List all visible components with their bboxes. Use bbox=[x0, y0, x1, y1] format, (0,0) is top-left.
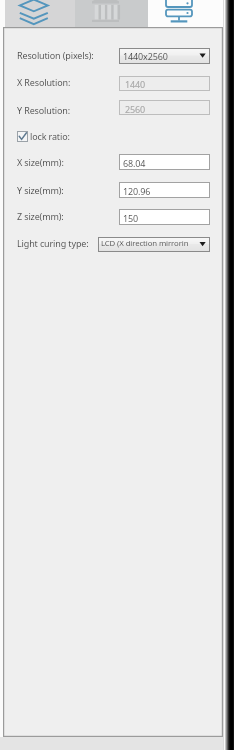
button[interactable]: Resolution preset bbox=[119, 48, 210, 64]
button[interactable]: Z size bbox=[119, 209, 210, 225]
button[interactable]: Support bbox=[75, 0, 148, 27]
button[interactable]: X Resolution bbox=[119, 76, 210, 91]
button[interactable]: X size bbox=[119, 154, 210, 170]
staticText: X size(mm): bbox=[17, 156, 64, 168]
staticText: 120.96 bbox=[123, 185, 151, 197]
button[interactable]: Y size bbox=[119, 182, 210, 198]
button[interactable]: Light curing type bbox=[98, 237, 210, 252]
staticText: X Resolution: bbox=[17, 76, 71, 88]
staticText: Light curing type: bbox=[17, 237, 89, 249]
staticText: lock ratio: bbox=[30, 130, 70, 142]
staticText: 2560 bbox=[125, 103, 146, 115]
button[interactable]: Y Resolution bbox=[119, 100, 210, 115]
staticText: 150 bbox=[123, 212, 139, 224]
staticText: LCD (X direction mirrorin bbox=[101, 238, 189, 249]
staticText: 1440x2560 bbox=[123, 50, 168, 62]
button[interactable]: lock ratio bbox=[17, 131, 28, 142]
staticText: Y size(mm): bbox=[17, 184, 64, 196]
staticText: 1440 bbox=[125, 78, 146, 90]
button[interactable]: Layers bbox=[5, 0, 75, 27]
staticText: Z size(mm): bbox=[17, 210, 64, 222]
staticText: 68.04 bbox=[123, 157, 146, 169]
staticText: Resolution (pixels): bbox=[17, 49, 94, 61]
staticText: Y Resolution: bbox=[17, 104, 70, 116]
button[interactable]: Machine bbox=[148, 0, 223, 27]
